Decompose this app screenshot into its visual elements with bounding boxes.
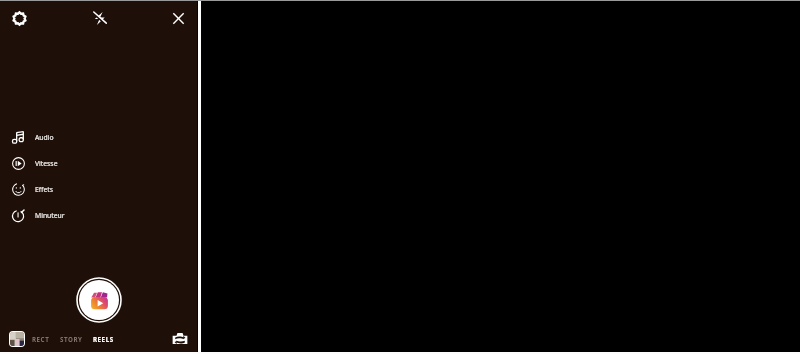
button[interactable]: Flip camera: [172, 331, 188, 347]
button[interactable]: Effets: [8, 176, 57, 202]
button[interactable]: STORY: [55, 330, 88, 348]
button[interactable]: RECT: [27, 330, 55, 348]
staticText: REELS: [93, 335, 114, 343]
staticText: Minuteur: [35, 211, 65, 220]
staticText: Vitesse: [35, 159, 58, 168]
button[interactable]: Close: [169, 9, 187, 27]
staticText: Effets: [35, 185, 53, 194]
button[interactable]: Record: [76, 277, 122, 323]
button[interactable]: Settings: [10, 9, 28, 27]
button[interactable]: Flash off: [90, 9, 108, 27]
staticText: STORY: [60, 335, 83, 343]
button[interactable]: REELS: [88, 330, 119, 348]
staticText: RECT: [32, 335, 50, 343]
button[interactable]: Gallery: [10, 332, 24, 346]
button[interactable]: Vitesse: [8, 150, 62, 176]
button[interactable]: Minuteur: [8, 202, 69, 228]
staticText: Audio: [35, 133, 54, 142]
button[interactable]: Audio: [8, 124, 58, 150]
